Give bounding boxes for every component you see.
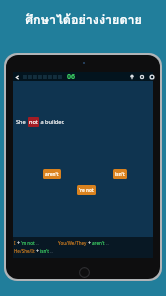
staticText: He/She/It — [14, 248, 35, 254]
staticText: isn't — [40, 248, 49, 254]
button[interactable]: isn't — [113, 169, 127, 179]
staticText: You/We/They — [58, 240, 87, 246]
staticText: 'm not — [21, 240, 35, 246]
staticText: .. — [49, 248, 53, 254]
staticText: ศึกษาได้อย่างง่ายดาย — [25, 10, 142, 26]
staticText: a builder. — [39, 118, 65, 126]
staticText: aren't — [45, 171, 59, 177]
button[interactable]: aren't — [43, 169, 61, 179]
staticText: + — [35, 248, 40, 254]
staticText: I — [14, 240, 16, 246]
button[interactable]: Hint — [128, 73, 136, 81]
staticText: .. — [35, 240, 39, 246]
staticText: .. — [105, 240, 109, 246]
button[interactable]: Settings — [138, 73, 146, 81]
button[interactable]: Back — [13, 73, 21, 81]
staticText: 06 — [67, 72, 76, 81]
button[interactable]: Restart — [148, 73, 156, 81]
staticText: + — [87, 240, 92, 246]
staticText: aren't — [92, 240, 105, 246]
staticText: 're not — [79, 187, 94, 193]
button[interactable]: 're not — [77, 185, 96, 195]
staticText: isn't — [115, 171, 125, 177]
staticText: She — [16, 118, 28, 126]
staticText: not — [29, 118, 38, 126]
staticText: + — [16, 240, 21, 246]
